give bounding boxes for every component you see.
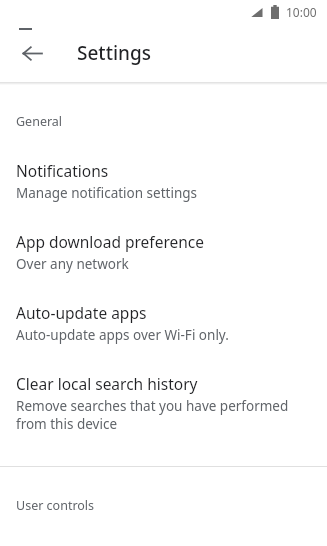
- staticText: Auto-update apps: [16, 302, 147, 323]
- staticText: Notifications: [16, 160, 109, 181]
- staticText: Over any network: [16, 255, 129, 273]
- staticText: App download preference: [16, 231, 205, 252]
- staticText: Settings: [77, 40, 151, 66]
- staticText: Manage notification settings: [16, 184, 198, 202]
- staticText: Remove searches that you have performed …: [16, 397, 289, 433]
- button[interactable]: Clear local search history: [0, 373, 327, 433]
- button[interactable]: Auto-update apps: [0, 302, 327, 344]
- staticText: 10:00: [286, 4, 317, 20]
- staticText: General: [16, 113, 327, 130]
- button[interactable]: Back: [10, 31, 54, 75]
- button[interactable]: Notifications: [0, 160, 327, 202]
- staticText: Clear local search history: [16, 373, 198, 394]
- staticText: Auto-update apps over Wi-Fi only.: [16, 326, 229, 344]
- staticText: User controls: [16, 497, 327, 514]
- button[interactable]: App download preference: [0, 231, 327, 273]
